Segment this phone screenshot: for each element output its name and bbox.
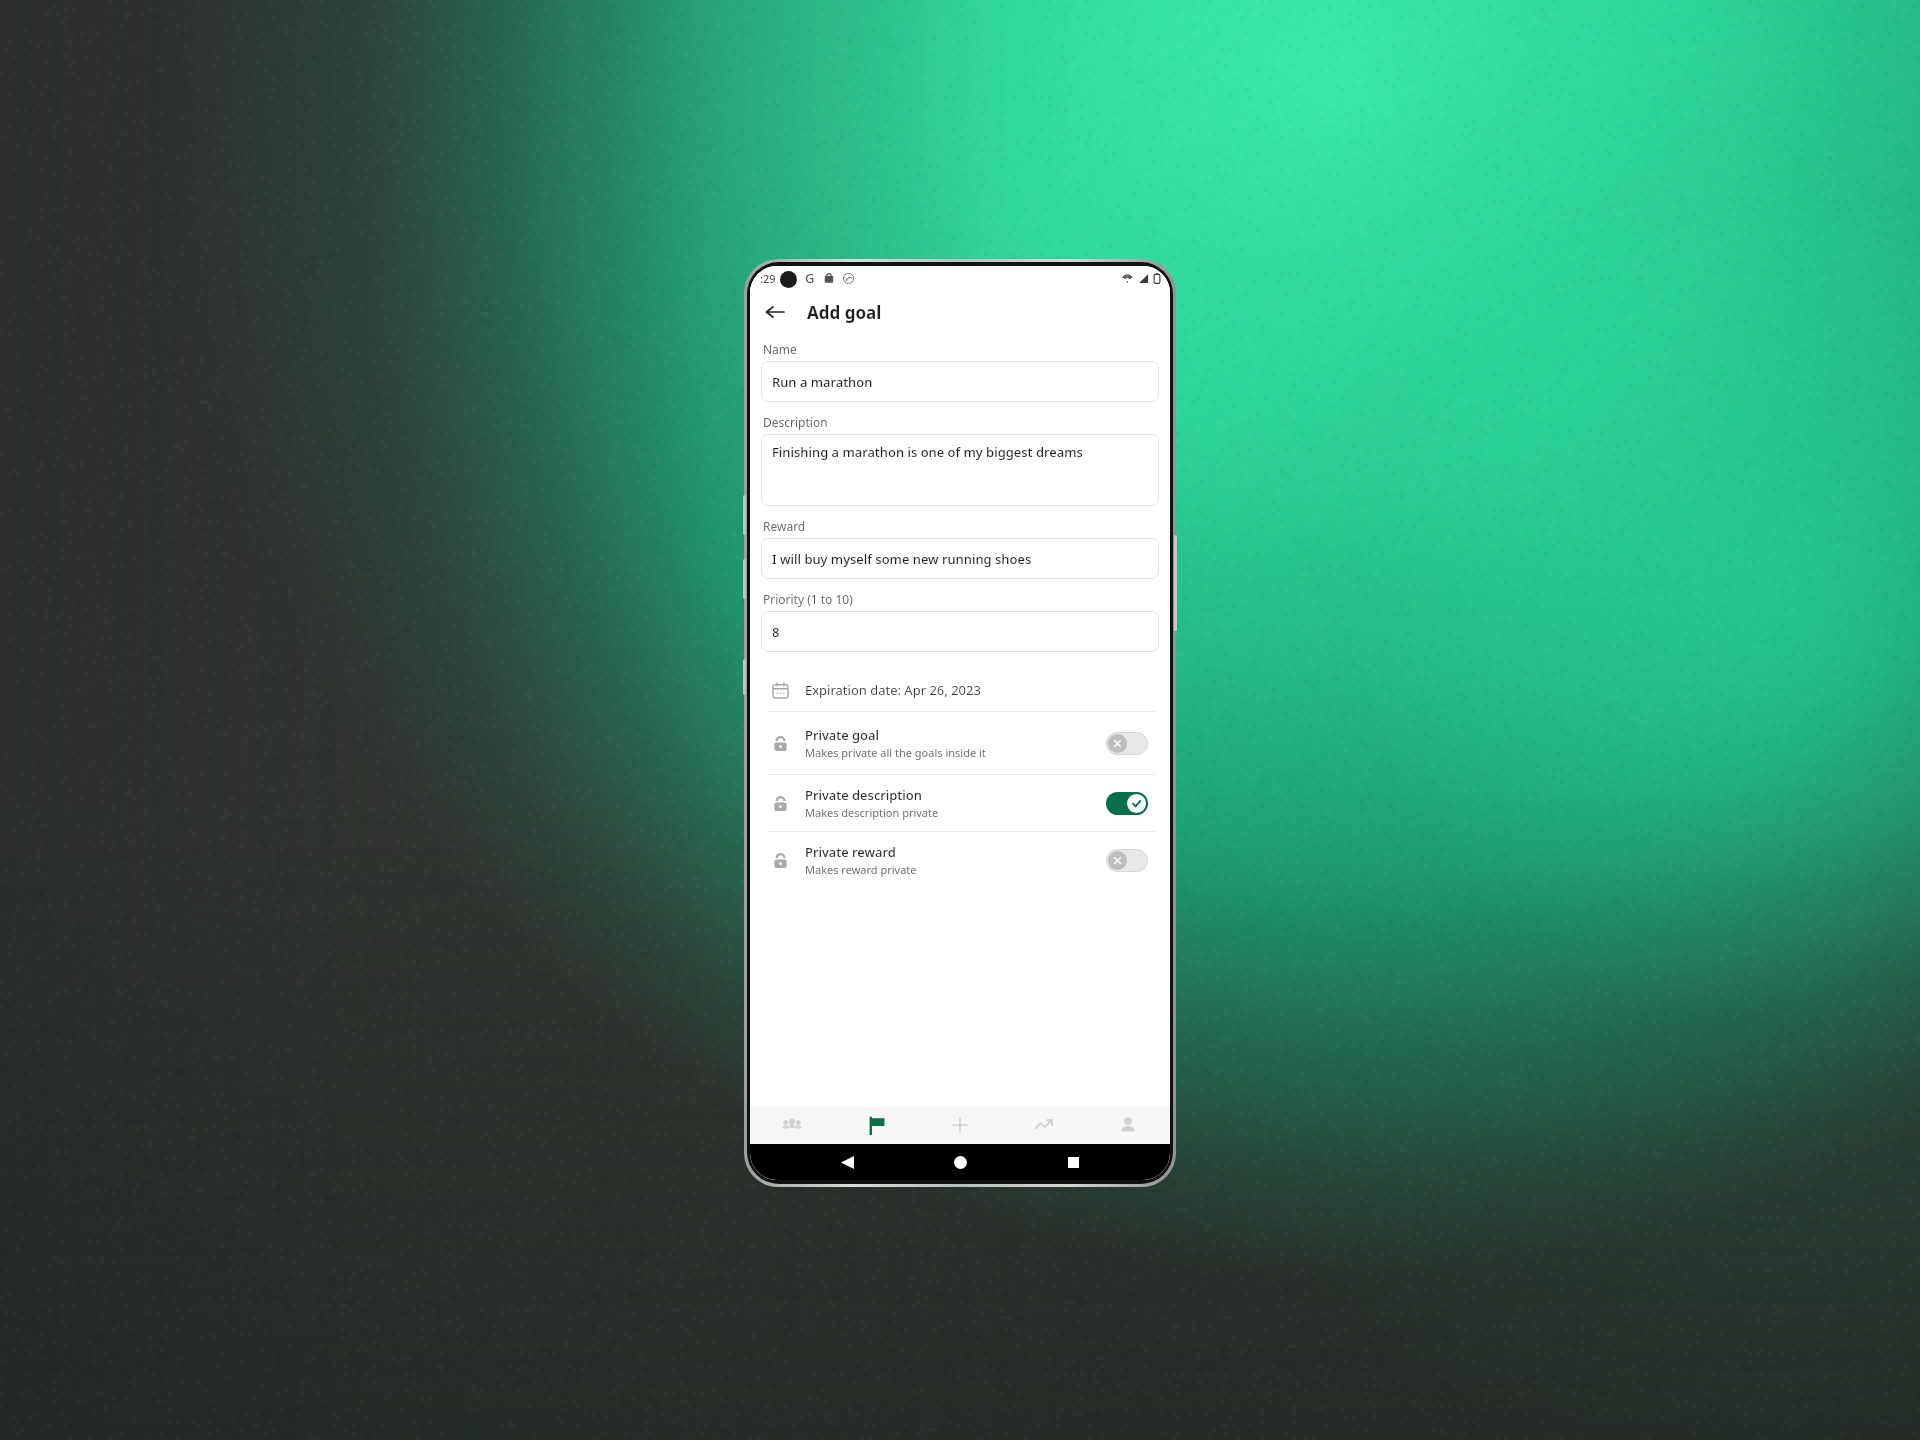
staticText: Makes description private (805, 805, 939, 820)
button[interactable]: Back (756, 293, 794, 331)
button[interactable]: Back (831, 1146, 863, 1178)
button[interactable]: I will buy myself some new running shoes (761, 538, 1159, 579)
button[interactable]: Goals (834, 1106, 918, 1144)
button[interactable]: 8 (761, 611, 1159, 652)
button[interactable]: Add (918, 1106, 1002, 1144)
button[interactable]: Recents (1057, 1146, 1089, 1178)
button[interactable]: Run a marathon (761, 361, 1159, 402)
staticText: Name (763, 341, 797, 357)
staticText: Finishing a marathon is one of my bigges… (772, 443, 1083, 461)
staticText: Reward (763, 518, 806, 534)
button[interactable]: Private goal (761, 712, 1159, 774)
staticText: Makes private all the goals inside it (805, 745, 986, 760)
staticText: Expiration date: Apr 26, 2023 (805, 681, 981, 699)
staticText: :29 (760, 271, 776, 286)
button[interactable]: Private reward (761, 832, 1159, 888)
staticText: Private goal (805, 726, 879, 744)
button[interactable]: Off (1106, 732, 1148, 755)
button[interactable]: Statistics (1002, 1106, 1086, 1144)
staticText: Add goal (807, 301, 882, 324)
button[interactable]: Profile (1086, 1106, 1170, 1144)
button[interactable]: Home (944, 1146, 976, 1178)
button[interactable]: On (1106, 792, 1148, 815)
staticText: Private reward (805, 843, 896, 861)
button[interactable]: Expiration date: Apr 26, 2023 (761, 669, 1159, 711)
button[interactable]: Finishing a marathon is one of my bigges… (761, 434, 1159, 506)
button[interactable]: Off (1106, 849, 1148, 872)
staticText: Description (763, 414, 828, 430)
staticText: Makes reward private (805, 862, 917, 877)
button[interactable]: Private description (761, 775, 1159, 831)
staticText: Private description (805, 786, 922, 804)
staticText: G (805, 269, 815, 287)
button[interactable]: Friends (750, 1106, 834, 1144)
staticText: Run a marathon (772, 373, 873, 391)
staticText: I will buy myself some new running shoes (772, 550, 1032, 568)
staticText: Priority (1 to 10) (763, 591, 853, 607)
staticText: 8 (772, 623, 780, 641)
